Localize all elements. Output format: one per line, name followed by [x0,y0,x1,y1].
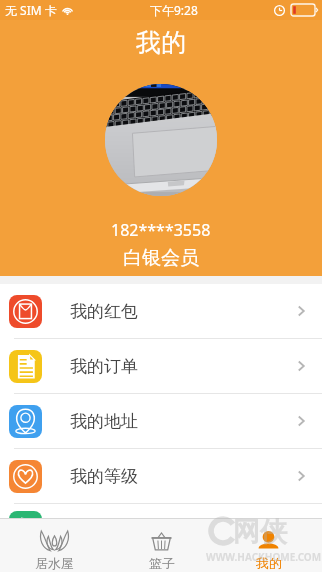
staticText: 网侠 [233,515,287,549]
button[interactable] [105,84,217,196]
staticText: 无 SIM 卡 [5,2,57,18]
button[interactable]: 我的等级 [0,449,322,504]
staticText: 我的订单 [70,356,138,377]
staticText: 下午9:28 [150,2,198,18]
staticText: 我的 [136,27,186,55]
button[interactable]: 我的红包 [0,284,322,339]
staticText: 我的 [256,555,282,571]
staticText: 我的等级 [70,466,138,487]
staticText: 居水屋 [35,555,74,571]
staticText: 篮子 [149,555,175,571]
staticText: 182****3558 [111,219,211,241]
button[interactable]: 我的订单 [0,339,322,394]
staticText: WWW.HACKHOME.COM [206,550,322,564]
button[interactable]: 在线客服 [0,504,322,558]
button[interactable]: 我的 [215,519,322,572]
staticText: 我的红包 [70,301,138,322]
button[interactable]: 我的地址 [0,394,322,449]
staticText: 白银会员 [123,246,199,270]
staticText: 我的地址 [70,411,138,432]
button[interactable]: 居水屋 [0,519,108,572]
button[interactable]: 篮子 [108,519,215,572]
